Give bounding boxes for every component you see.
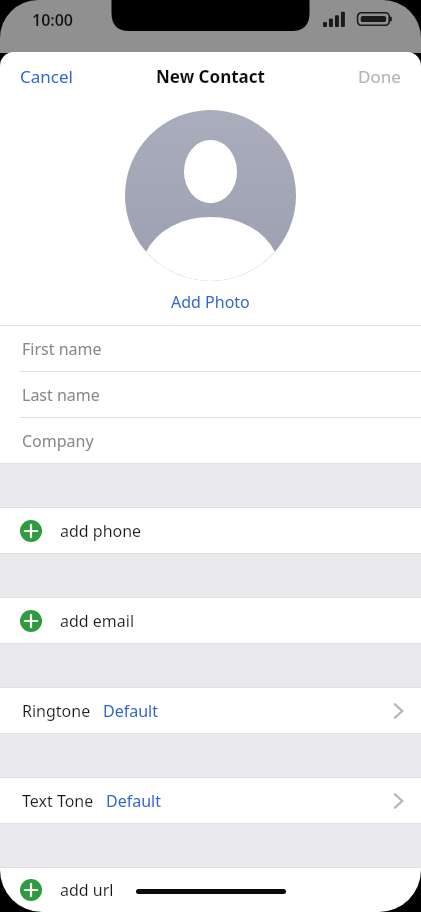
staticText: Default — [106, 790, 161, 812]
staticText: Text Tone — [22, 790, 94, 812]
button[interactable]: add phone — [0, 508, 421, 553]
staticText: Last name — [22, 384, 100, 406]
staticText: add url — [60, 879, 114, 901]
button[interactable]: Text Tone — [0, 778, 421, 823]
staticText: First name — [22, 338, 102, 360]
staticText: 10:00 — [32, 9, 74, 31]
button[interactable]: Company — [0, 418, 421, 463]
staticText: Company — [22, 430, 94, 452]
staticText: Add Photo — [171, 291, 250, 313]
button[interactable]: First name — [0, 326, 421, 371]
staticText: add email — [60, 610, 135, 632]
button[interactable]: Cancel — [0, 55, 93, 98]
staticText: Ringtone — [22, 700, 91, 722]
button[interactable]: Done — [338, 55, 421, 98]
button[interactable]: Contact photo — [125, 110, 296, 281]
staticText: New Contact — [156, 65, 265, 88]
staticText: Default — [103, 700, 158, 722]
button[interactable]: Add Photo — [157, 287, 264, 317]
button[interactable]: add email — [0, 598, 421, 643]
staticText: Done — [358, 65, 401, 88]
button[interactable]: Ringtone — [0, 688, 421, 733]
staticText: add phone — [60, 520, 142, 542]
button[interactable]: add url — [0, 868, 421, 912]
staticText: Cancel — [20, 65, 73, 88]
button[interactable]: Last name — [0, 372, 421, 417]
